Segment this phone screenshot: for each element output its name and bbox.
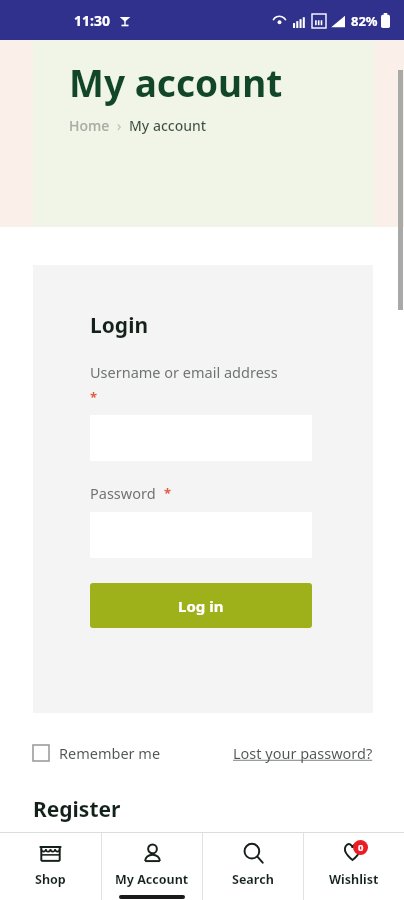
staticText: * [90, 388, 98, 406]
staticText: Login [90, 311, 149, 340]
staticText: Shop [35, 871, 66, 888]
staticText: Remember me [59, 743, 161, 763]
staticText: Home [69, 116, 110, 135]
other: My Account [141, 842, 164, 865]
staticText: My account [69, 57, 283, 107]
other: Search [242, 842, 265, 865]
staticText: 0 [358, 841, 364, 854]
button[interactable]: Remember me [33, 743, 161, 763]
staticText: Log in [178, 596, 224, 616]
button[interactable]: Log in [90, 583, 312, 628]
staticText: Wishlist [329, 871, 379, 888]
staticText: My account [129, 116, 207, 135]
staticText: My Account [115, 871, 189, 888]
staticText: 82% [351, 12, 378, 30]
button[interactable]: My Account [102, 833, 202, 900]
staticText: Lost your password? [233, 743, 373, 763]
staticText: Username or email address [90, 362, 278, 382]
staticText: 11:30 [74, 11, 110, 30]
staticText: * [164, 484, 172, 502]
button[interactable]: Lost your password? [233, 743, 373, 763]
staticText: Password [90, 483, 156, 503]
staticText: Register [33, 795, 121, 824]
button[interactable]: Wishlist [304, 833, 404, 900]
button[interactable]: Search [203, 833, 303, 900]
other: Shop [39, 842, 62, 865]
staticText: › [117, 116, 122, 135]
staticText: Search [232, 871, 274, 888]
other: Wishlist [343, 842, 366, 865]
button[interactable]: Shop [0, 833, 101, 900]
button[interactable]: Home [69, 116, 110, 135]
